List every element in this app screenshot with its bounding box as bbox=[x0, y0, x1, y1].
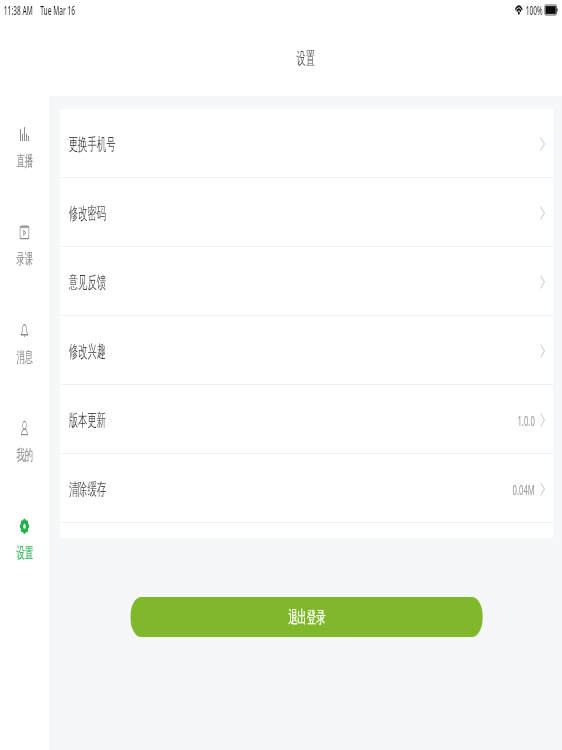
staticText: 我的 bbox=[16, 446, 33, 465]
button[interactable]: 意见反馈 bbox=[60, 247, 553, 315]
button[interactable]: 版本更新 bbox=[60, 385, 553, 453]
staticText: 1.0.0 bbox=[517, 411, 535, 430]
staticText: 修改密码 bbox=[69, 203, 106, 224]
button[interactable]: 退出登录 bbox=[130, 597, 483, 637]
staticText: 直播 bbox=[16, 152, 33, 171]
button[interactable]: Live bbox=[0, 127, 49, 171]
staticText: 更换手机号 bbox=[69, 134, 115, 155]
staticText: 意见反馈 bbox=[69, 272, 106, 293]
staticText: 设置 bbox=[16, 544, 33, 563]
staticText: 设置 bbox=[296, 48, 315, 69]
staticText: 11:38 AM bbox=[4, 2, 33, 18]
staticText: 退出登录 bbox=[288, 607, 325, 628]
button[interactable]: Profile bbox=[0, 421, 49, 465]
button[interactable]: Settings bbox=[0, 519, 49, 563]
button[interactable]: 修改密码 bbox=[60, 178, 553, 246]
button[interactable]: 修改兴趣 bbox=[60, 316, 553, 384]
staticText: 消息 bbox=[16, 348, 33, 367]
button[interactable]: Record bbox=[0, 225, 49, 269]
staticText: 100% bbox=[526, 2, 543, 18]
staticText: 录课 bbox=[16, 250, 33, 269]
staticText: 版本更新 bbox=[69, 410, 106, 431]
staticText: 修改兴趣 bbox=[69, 341, 106, 362]
staticText: 0.04M bbox=[512, 480, 535, 499]
staticText: Tue Mar 16 bbox=[40, 2, 75, 18]
button[interactable]: Messages bbox=[0, 323, 49, 367]
button[interactable]: 更换手机号 bbox=[60, 109, 553, 177]
staticText: 清除缓存 bbox=[69, 479, 106, 500]
button[interactable]: 清除缓存 bbox=[60, 454, 553, 522]
